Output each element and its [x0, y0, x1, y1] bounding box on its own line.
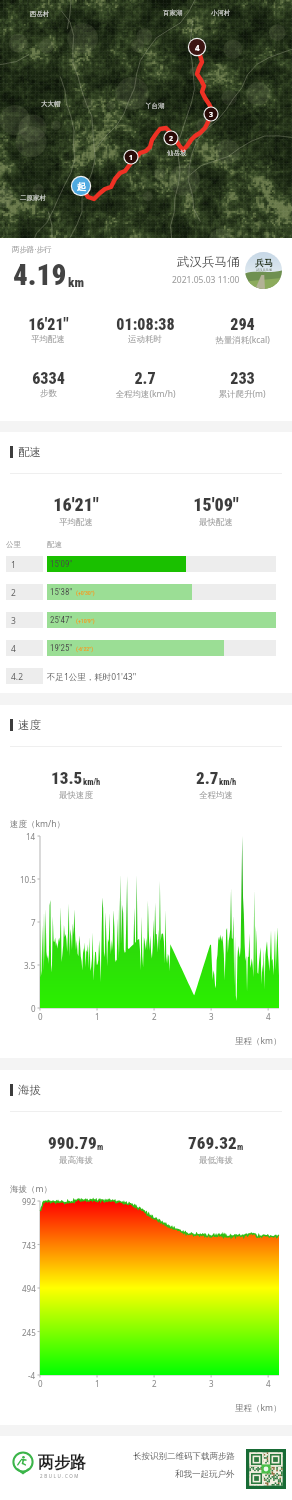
staticText: (+10'9") — [76, 617, 95, 624]
staticText: m — [237, 1142, 244, 1152]
staticText: 速度 — [18, 718, 41, 732]
staticText: 992 — [22, 1196, 36, 1207]
staticText: 3 — [209, 110, 214, 120]
staticText: 起 — [77, 181, 86, 192]
staticText: 4 — [195, 42, 200, 53]
staticText: 2 — [11, 587, 16, 599]
staticText: km — [68, 275, 84, 290]
staticText: 2 — [169, 134, 174, 144]
staticText: 最低海拔 — [199, 1155, 233, 1166]
staticText: 运动耗时 — [128, 334, 162, 345]
staticText: 西岳村 — [30, 10, 50, 18]
staticText: 6334 — [32, 369, 65, 388]
staticText: 2BULU.COM — [40, 1473, 81, 1479]
staticText: 小河村 — [211, 9, 231, 17]
staticText: 速度（km/h） — [10, 818, 65, 830]
staticText: 海拔（m） — [10, 1183, 52, 1195]
staticText: 19'25" — [50, 643, 73, 654]
staticText: 3 — [11, 615, 16, 627]
staticText: 不足1公里，耗时01'43" — [47, 671, 137, 683]
staticText: (-6'22") — [76, 645, 94, 652]
staticText: 4 — [266, 1011, 271, 1022]
staticText: 兵马 — [255, 257, 273, 268]
staticText: 25'47" — [50, 615, 73, 626]
staticText: 1 — [129, 153, 134, 163]
staticText: 1 — [95, 1011, 100, 1022]
staticText: 里程（km） — [235, 1402, 282, 1414]
staticText: 2021.05.03 11:00 — [172, 274, 240, 286]
staticText: 两步路·步行 — [12, 244, 52, 254]
staticText: 15'09" — [193, 494, 239, 515]
staticText: 2.7 — [134, 369, 156, 388]
staticText: 海拔 — [18, 1083, 41, 1097]
staticText: 10.5 — [20, 874, 36, 885]
staticText: 0 — [38, 1011, 43, 1022]
staticText: 步数 — [40, 388, 57, 399]
staticText: 长按识别二维码下载两步路 — [133, 1451, 235, 1462]
staticText: 4.2 — [11, 671, 24, 683]
staticText: 15'09" — [50, 559, 73, 570]
staticText: 最快配速 — [199, 517, 233, 528]
staticText: 743 — [22, 1240, 36, 1251]
staticText: 16'21" — [53, 494, 99, 515]
staticText: 仙岳坡 — [167, 149, 187, 157]
staticText: 769.32 — [188, 1133, 237, 1153]
staticText: 990.79 — [48, 1133, 97, 1153]
staticText: 2 — [152, 1011, 157, 1022]
staticText: km/h — [83, 777, 101, 787]
staticText: 两步路 — [38, 1453, 86, 1473]
staticText: 16'21" — [28, 315, 69, 334]
staticText: 245 — [22, 1327, 36, 1338]
staticText: 百家湖 — [163, 9, 183, 17]
staticText: 配速 — [47, 540, 62, 549]
staticText: 4 — [11, 643, 16, 655]
staticText: 0 — [31, 1003, 36, 1014]
staticText: (+0'30") — [76, 589, 95, 596]
staticText: 最高海拔 — [59, 1155, 93, 1166]
staticText: 233 — [230, 369, 255, 388]
staticText: 平均配速 — [31, 334, 65, 345]
staticText: -4 — [28, 1370, 36, 1381]
staticText: 01:08:38 — [116, 315, 175, 334]
staticText: 配速 — [18, 445, 41, 459]
staticText: 全程均速 — [199, 790, 233, 801]
staticText: 最快速度 — [59, 790, 93, 801]
staticText: 3 — [209, 1011, 214, 1022]
staticText: 0 — [38, 1378, 43, 1389]
staticText: 平均配速 — [59, 517, 93, 528]
staticText: 大大帽 — [41, 100, 61, 108]
staticText: 丫台湖 — [145, 102, 165, 110]
staticText: 7 — [31, 917, 36, 928]
staticText: 13.5 — [51, 768, 83, 788]
staticText: 热量消耗(kcal) — [215, 334, 270, 346]
staticText: 武汉兵马俑 — [256, 268, 272, 272]
staticText: 15'38" — [50, 587, 73, 598]
staticText: 2 — [152, 1378, 157, 1389]
staticText: 3 — [209, 1378, 214, 1389]
staticText: 里程（km） — [235, 1035, 282, 1047]
staticText: 494 — [22, 1283, 36, 1294]
staticText: 武汉兵马俑 — [177, 254, 240, 270]
staticText: 4 — [266, 1378, 271, 1389]
staticText: 1 — [95, 1378, 100, 1389]
staticText: 二原家村 — [20, 194, 46, 202]
staticText: 294 — [230, 315, 255, 334]
staticText: 累计爬升(m) — [218, 388, 266, 400]
staticText: 3.5 — [24, 960, 36, 971]
staticText: 14 — [26, 831, 36, 842]
staticText: 公里 — [6, 540, 21, 549]
staticText: m — [97, 1142, 104, 1152]
staticText: 4.19 — [13, 258, 67, 292]
staticText: km/h — [219, 777, 237, 787]
staticText: 全程均速(km/h) — [115, 388, 176, 400]
staticText: 1 — [11, 559, 16, 571]
staticText: 2.7 — [196, 768, 219, 788]
staticText: 和我一起玩户外 — [175, 1469, 235, 1480]
